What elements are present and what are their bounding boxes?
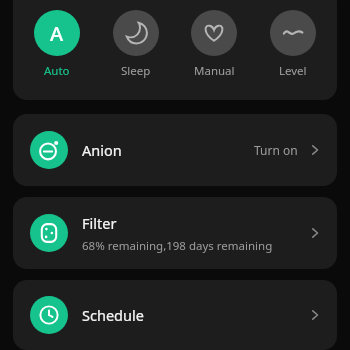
other: Open xyxy=(307,142,323,158)
staticText: A xyxy=(50,20,64,47)
staticText: Level xyxy=(279,63,307,79)
button[interactable]: Level xyxy=(258,10,328,79)
staticText: Turn on xyxy=(254,142,298,158)
other: Open xyxy=(307,307,323,323)
staticText: Manual xyxy=(194,63,235,79)
staticText: Auto xyxy=(44,63,70,79)
staticText: Filter xyxy=(82,213,117,233)
button[interactable]: Anion xyxy=(13,114,337,186)
button[interactable]: Filter xyxy=(13,197,337,269)
staticText: Anion xyxy=(82,140,122,160)
button[interactable]: Sleep xyxy=(101,10,171,79)
button[interactable]: A xyxy=(22,10,92,79)
other: Open xyxy=(307,225,323,241)
staticText: Schedule xyxy=(82,305,144,325)
staticText: Sleep xyxy=(121,63,151,79)
button[interactable]: Manual xyxy=(179,10,249,79)
button[interactable]: Schedule xyxy=(13,280,337,350)
staticText: 68% remaining,198 days remaining xyxy=(82,238,273,254)
